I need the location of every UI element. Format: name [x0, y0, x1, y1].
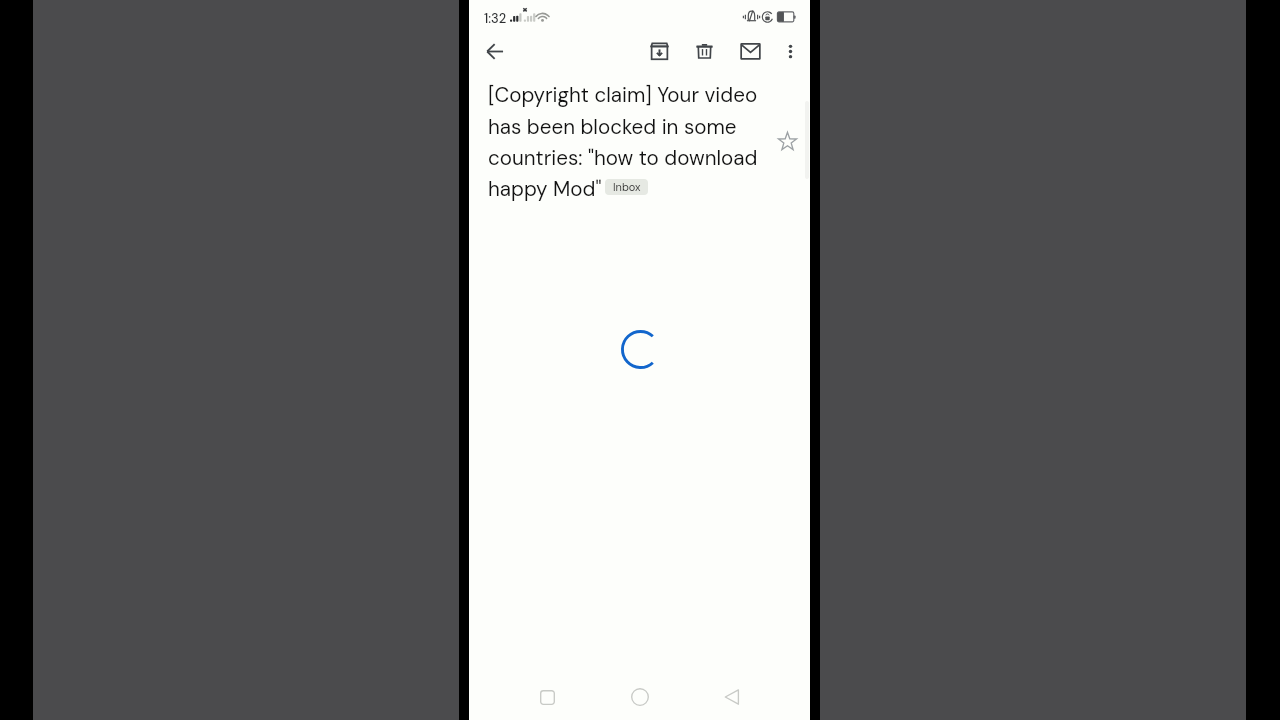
staticText: Inbox [613, 180, 641, 194]
button[interactable]: Back [470, 26, 520, 76]
button[interactable]: Star [767, 121, 807, 161]
button[interactable]: Back [712, 677, 752, 717]
button[interactable]: Mark as unread [725, 26, 775, 76]
staticText: [Copyright claim] Your video has been bl… [488, 82, 758, 202]
button[interactable]: Home [620, 677, 660, 717]
staticText: 1:32 [484, 10, 507, 27]
button[interactable]: More options [765, 26, 815, 76]
button[interactable]: Recent apps [527, 677, 567, 717]
button[interactable]: Archive [634, 26, 684, 76]
button[interactable]: Inbox [605, 179, 648, 195]
button[interactable]: Delete [679, 26, 729, 76]
